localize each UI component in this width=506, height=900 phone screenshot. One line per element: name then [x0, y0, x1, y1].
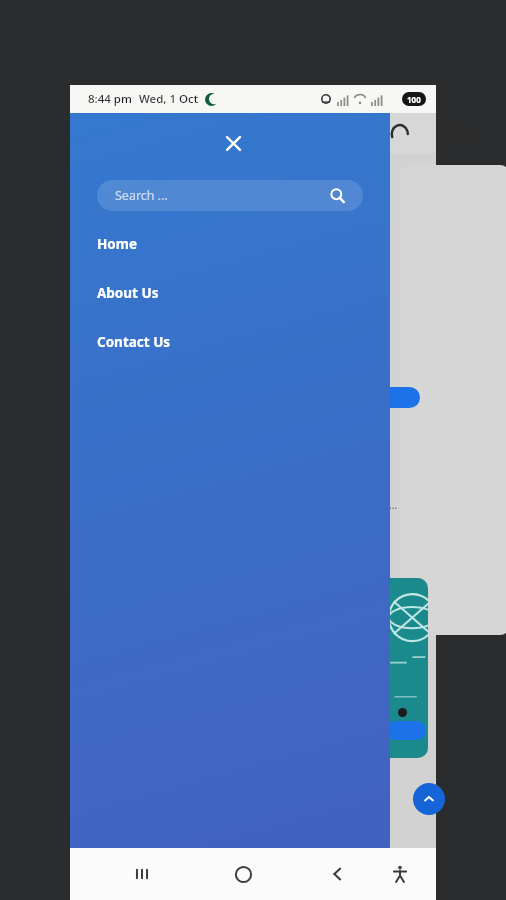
button[interactable]: Contact Us — [70, 322, 390, 362]
staticText: n… — [382, 497, 398, 512]
button[interactable]: Home — [207, 848, 279, 900]
staticText: Contact Us — [97, 333, 171, 351]
button[interactable]: Close menu — [215, 125, 251, 161]
staticText: Home — [97, 235, 137, 253]
button[interactable]: Search ... — [97, 180, 363, 211]
button[interactable]: Scroll to top — [413, 783, 445, 815]
staticText: About Us — [97, 284, 159, 302]
staticText: Search ... — [115, 187, 168, 204]
staticText: 100 — [407, 94, 421, 105]
button[interactable]: Accessibility — [374, 848, 426, 900]
button[interactable] — [386, 721, 426, 740]
staticText: 8:44 pm — [88, 91, 132, 107]
button[interactable] — [370, 387, 420, 408]
staticText: on: — [390, 845, 407, 860]
staticText: Wed, 1 Oct — [139, 91, 199, 107]
button[interactable]: Call — [380, 123, 490, 145]
button[interactable]: About Us — [70, 273, 390, 313]
button[interactable]: Home — [70, 224, 390, 264]
button[interactable]: Back — [308, 848, 368, 900]
button[interactable]: Recents — [106, 848, 178, 900]
